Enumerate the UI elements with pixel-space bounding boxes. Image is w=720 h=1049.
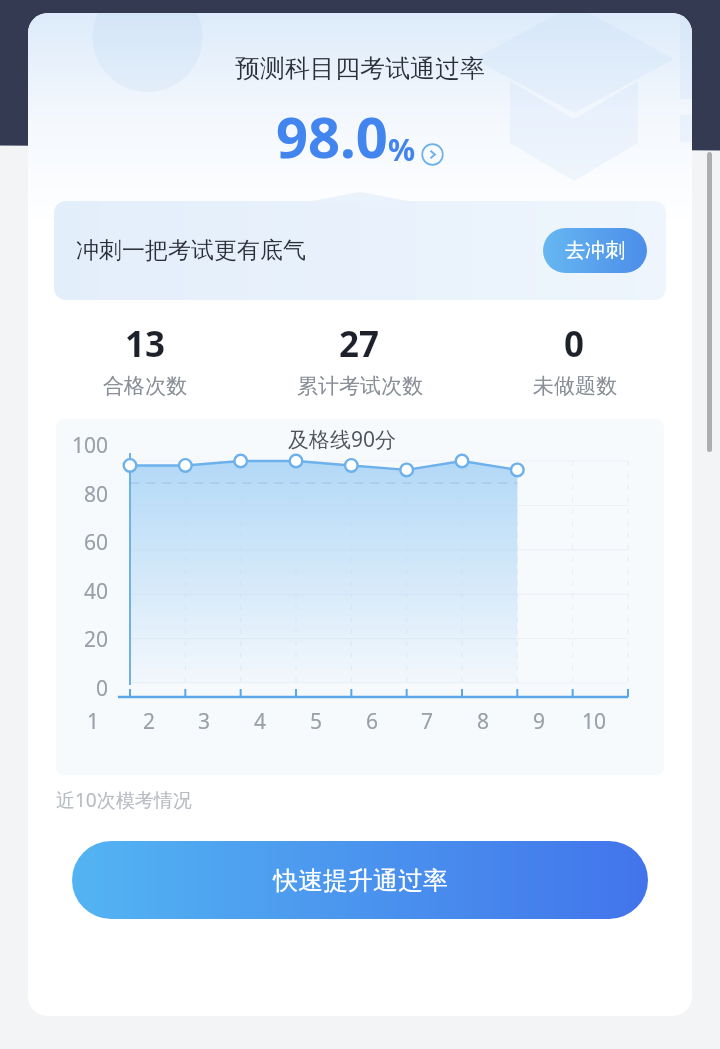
staticText: 累计考试次数 bbox=[297, 373, 423, 399]
staticText: 去冲刺 bbox=[565, 238, 625, 263]
staticText: 6 bbox=[357, 707, 387, 736]
staticText: 20 bbox=[56, 625, 108, 654]
button[interactable]: 13 bbox=[38, 320, 252, 399]
staticText: 2 bbox=[134, 707, 164, 736]
staticText: 10 bbox=[579, 707, 609, 736]
staticText: 80 bbox=[56, 480, 108, 509]
staticText: 13 bbox=[125, 320, 166, 368]
other: 查看详情 bbox=[421, 143, 444, 166]
staticText: 4 bbox=[245, 707, 275, 736]
staticText: 及格线90分 bbox=[288, 425, 397, 454]
staticText: 5 bbox=[301, 707, 331, 736]
staticText: 预测科目四考试通过率 bbox=[28, 53, 692, 84]
staticText: 1 bbox=[78, 707, 108, 736]
staticText: 合格次数 bbox=[103, 373, 187, 399]
staticText: 未做题数 bbox=[533, 373, 617, 399]
staticText: 快速提升通过率 bbox=[273, 865, 448, 896]
staticText: 7 bbox=[412, 707, 442, 736]
staticText: 27 bbox=[339, 320, 380, 368]
staticText: 60 bbox=[56, 528, 108, 557]
staticText: 近10次模考情况 bbox=[56, 787, 192, 813]
button[interactable]: 0 bbox=[467, 320, 682, 399]
staticText: % bbox=[388, 129, 416, 170]
staticText: 40 bbox=[56, 577, 108, 606]
staticText: 0 bbox=[564, 320, 585, 368]
button[interactable]: 98.0 bbox=[28, 98, 692, 174]
staticText: 9 bbox=[524, 707, 554, 736]
staticText: 0 bbox=[56, 674, 108, 703]
staticText: 3 bbox=[189, 707, 219, 736]
button[interactable]: 快速提升通过率 bbox=[72, 841, 648, 919]
staticText: 8 bbox=[468, 707, 498, 736]
staticText: 100 bbox=[56, 431, 108, 460]
button[interactable]: 去冲刺 bbox=[543, 228, 647, 273]
button[interactable]: 27 bbox=[252, 320, 467, 399]
staticText: 冲刺一把考试更有底气 bbox=[76, 236, 306, 265]
staticText: 98.0 bbox=[276, 98, 388, 174]
